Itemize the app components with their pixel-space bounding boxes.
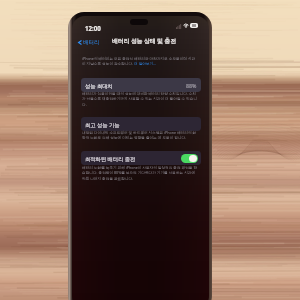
button[interactable]: 최적화된 배터리 충전: [81, 151, 201, 165]
staticText: iPhone의 배터리는 모든 충전식 배터리와 마찬가지로 소모품이며 시간이…: [82, 56, 198, 66]
staticText: 배터리가 신품이었을 때의 성능에 대비한 배터리 잔량 수치입니다. 수치가 …: [82, 91, 198, 107]
staticText: 내장된 다이내믹 소프트웨어 및 하드웨어 시스템은 iPhone 배터리의 화…: [82, 130, 198, 140]
button[interactable]: Optimized Battery Charging toggle: [181, 154, 198, 163]
staticText: 최고 성능 기능: [85, 121, 120, 128]
button[interactable]: 배터리: [78, 39, 100, 46]
button[interactable]: 최고 성능 기능: [81, 117, 201, 131]
button[interactable]: 성능 최대치: [81, 78, 201, 92]
staticText: 배터리 성능 상태 및 충전: [112, 37, 176, 45]
staticText: 배터리: [83, 39, 100, 46]
staticText: 88: [192, 23, 197, 28]
staticText: 12:00: [85, 24, 101, 32]
staticText: 88%: [186, 82, 197, 89]
staticText: 배터리 노화를 늦추기 위해 iPhone이 사용자의 일상적인 충전 패턴을 …: [82, 165, 198, 181]
staticText: 성능 최대치: [85, 82, 113, 89]
staticText: 최적화된 배터리 충전: [85, 155, 136, 162]
